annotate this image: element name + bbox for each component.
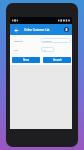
button[interactable]: Account <box>64 27 69 32</box>
button[interactable]: US <box>41 47 54 52</box>
staticText: New <box>23 58 29 62</box>
staticText: US <box>43 48 47 51</box>
staticText: Reseller <box>43 39 52 42</box>
button[interactable]: Search <box>43 57 71 63</box>
staticText: Search <box>53 58 62 62</box>
button[interactable]: New <box>12 57 40 63</box>
staticText: GST <box>14 48 19 51</box>
button[interactable]: Reseller <box>41 38 71 43</box>
staticText: Online Customer List <box>24 28 50 32</box>
staticText: Reseller <box>14 39 23 42</box>
button[interactable]: Back <box>13 27 19 33</box>
